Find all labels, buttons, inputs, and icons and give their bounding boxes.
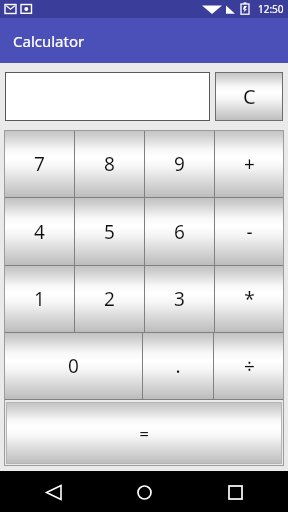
button[interactable] (5, 72, 210, 121)
staticText: 2 (104, 286, 115, 312)
staticText: 5 (104, 219, 115, 245)
button[interactable]: 1 (4, 266, 74, 332)
staticText: . (175, 353, 181, 379)
staticText: - (246, 219, 253, 245)
button[interactable]: - (215, 198, 284, 265)
button[interactable]: Recent apps (218, 475, 252, 509)
button[interactable]: . (143, 333, 213, 399)
staticText: 9 (174, 151, 185, 177)
staticText: + (244, 151, 255, 177)
staticText: C (243, 83, 256, 110)
button[interactable]: 3 (145, 266, 214, 332)
button[interactable]: = (6, 402, 282, 464)
button[interactable]: 9 (145, 130, 214, 197)
button[interactable]: C (215, 72, 283, 121)
button[interactable]: * (215, 266, 284, 332)
button[interactable]: Back (36, 475, 70, 509)
button[interactable]: 4 (4, 198, 74, 265)
staticText: 3 (174, 286, 185, 312)
staticText: * (244, 286, 255, 312)
button[interactable]: 2 (75, 266, 144, 332)
staticText: 0 (68, 353, 79, 379)
button[interactable]: ÷ (214, 333, 284, 399)
staticText: 6 (174, 219, 185, 245)
staticText: 12:50 (258, 2, 284, 16)
staticText: = (139, 422, 149, 445)
staticText: 7 (34, 151, 45, 177)
button[interactable]: Home (127, 475, 161, 509)
button[interactable]: Calculator (0, 18, 288, 63)
button[interactable]: 5 (75, 198, 144, 265)
staticText: ÷ (244, 353, 255, 379)
button[interactable]: + (215, 130, 284, 197)
staticText: 4 (34, 219, 45, 245)
staticText: 8 (104, 151, 115, 177)
button[interactable]: 8 (75, 130, 144, 197)
staticText: 1 (34, 286, 45, 312)
button[interactable]: 6 (145, 198, 214, 265)
staticText: Calculator (13, 31, 85, 51)
button[interactable]: 7 (4, 130, 74, 197)
button[interactable]: 0 (4, 333, 142, 399)
